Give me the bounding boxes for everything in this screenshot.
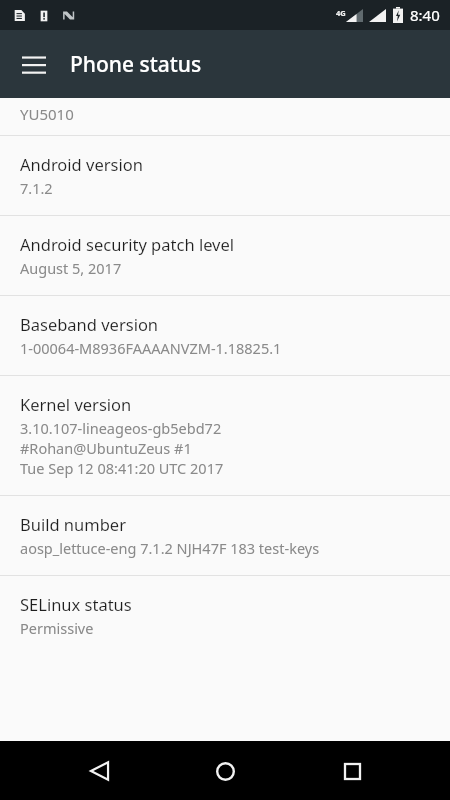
button[interactable]: Android version (0, 136, 450, 215)
staticText: Kernel version (20, 393, 132, 415)
staticText: Build number (20, 513, 126, 535)
button[interactable]: Kernel version (0, 376, 450, 495)
button[interactable]: Home (197, 743, 253, 799)
button[interactable]: Back (71, 743, 127, 799)
staticText: 4G (336, 8, 346, 18)
staticText: YU5010 (20, 104, 74, 124)
staticText: Permissive (20, 618, 94, 638)
staticText: 7.1.2 (20, 178, 53, 198)
staticText: Android version (20, 153, 143, 175)
button[interactable]: Build number (0, 496, 450, 575)
button[interactable]: Recent apps (324, 743, 380, 799)
staticText: 1-00064-M8936FAAAANVZM-1.18825.1 (20, 338, 282, 358)
staticText: August 5, 2017 (20, 258, 122, 278)
button[interactable]: Android security patch level (0, 216, 450, 295)
button[interactable]: YU5010 (0, 98, 450, 135)
staticText: Tue Sep 12 08:41:20 UTC 2017 (20, 458, 224, 478)
staticText: 8:40 (410, 5, 440, 25)
staticText: #Rohan@UbuntuZeus #1 (20, 438, 192, 458)
button[interactable]: Baseband version (0, 296, 450, 375)
staticText: SELinux status (20, 593, 132, 615)
staticText: Phone status (70, 50, 202, 79)
staticText: Android security patch level (20, 233, 235, 255)
button[interactable]: Open navigation menu (10, 40, 58, 88)
button[interactable]: SELinux status (0, 576, 450, 655)
staticText: aosp_lettuce-eng 7.1.2 NJH47F 183 test-k… (20, 538, 320, 558)
staticText: 3.10.107-lineageos-gb5ebd72 (20, 418, 222, 438)
staticText: Baseband version (20, 313, 159, 335)
